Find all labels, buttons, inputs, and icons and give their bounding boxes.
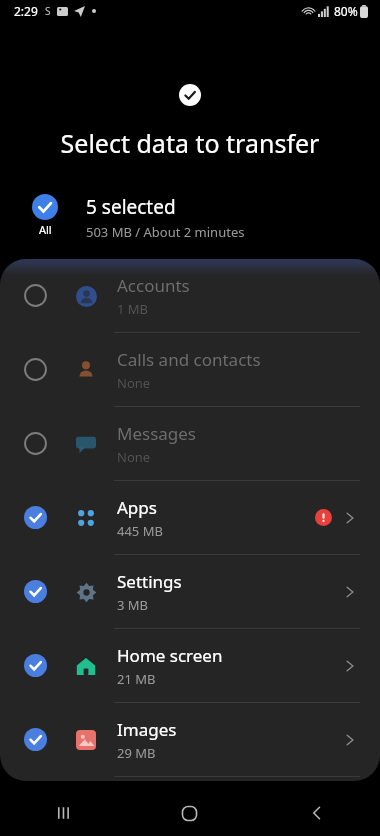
staticText: None xyxy=(117,374,151,392)
staticText: 80% xyxy=(334,3,358,19)
button[interactable]: Home xyxy=(126,790,253,836)
staticText: All xyxy=(39,222,52,237)
staticText: 21 MB xyxy=(117,670,156,688)
staticText: None xyxy=(117,448,151,466)
button[interactable]: Calls and contacts xyxy=(0,333,380,406)
button[interactable]: Back xyxy=(253,790,380,836)
button[interactable]: Messages xyxy=(0,407,380,480)
button[interactable]: Apps xyxy=(0,481,380,554)
button[interactable]: Images xyxy=(0,703,380,776)
staticText: Accounts xyxy=(117,274,190,297)
staticText: Settings xyxy=(117,570,182,593)
staticText: 445 MB xyxy=(117,522,163,540)
staticText: 2:29 xyxy=(14,3,38,19)
staticText: Images xyxy=(117,718,177,741)
staticText: 3 MB xyxy=(117,596,149,614)
staticText: Calls and contacts xyxy=(117,348,261,371)
button[interactable]: Settings xyxy=(0,555,380,628)
button[interactable]: Home screen xyxy=(0,629,380,702)
button[interactable]: Accounts xyxy=(0,259,380,332)
staticText: 1 MB xyxy=(117,300,149,318)
staticText: S xyxy=(45,4,51,18)
staticText: 503 MB / About 2 minutes xyxy=(86,223,245,241)
staticText: Select data to transfer xyxy=(20,126,360,160)
staticText: 29 MB xyxy=(117,744,156,762)
button[interactable]: Recent apps xyxy=(0,790,126,836)
staticText: Apps xyxy=(117,496,157,519)
staticText: 5 selected xyxy=(86,194,176,220)
button[interactable]: All xyxy=(18,194,380,241)
staticText: Home screen xyxy=(117,644,223,667)
staticText: Messages xyxy=(117,422,197,445)
